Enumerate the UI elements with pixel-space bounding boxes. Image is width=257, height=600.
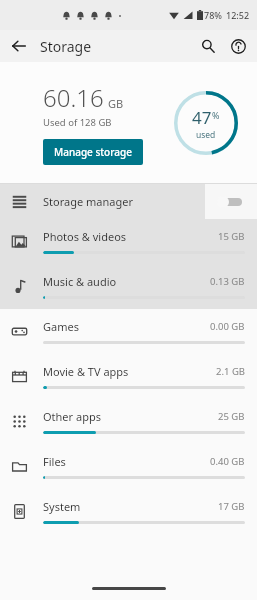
staticText: Manage storage [54,145,132,159]
staticText: Other apps [43,409,101,424]
staticText: Used of 128 GB [43,116,112,129]
staticText: Music & audio [43,274,117,289]
button[interactable]: System [0,489,257,534]
button[interactable]: Photos & videos [0,219,257,264]
staticText: Games [43,319,79,334]
staticText: Photos & videos [43,229,127,244]
staticText: 25 GB [218,410,245,423]
staticText: 47 [192,106,212,129]
button[interactable]: Music & audio [0,264,257,309]
staticText: 15 GB [218,230,245,243]
staticText: 0.40 GB [210,455,245,468]
staticText: System [43,499,81,514]
staticText: 78% [204,9,222,21]
staticText: 0.13 GB [210,275,245,288]
staticText: 60.16 [43,81,104,114]
staticText: Files [43,454,66,469]
button[interactable]: Back [6,33,32,59]
staticText: Storage [40,37,92,56]
button[interactable]: Manage storage [43,139,143,165]
button[interactable]: Games [0,309,257,354]
button[interactable]: Movie & TV apps [0,354,257,399]
staticText: 12:52 [226,9,250,21]
staticText: % [212,109,220,121]
staticText: 17 GB [218,500,245,513]
button[interactable]: Storage manager toggle [216,192,246,212]
staticText: Movie & TV apps [43,364,129,379]
staticText: Storage manager [43,194,133,209]
staticText: GB [108,96,124,111]
button[interactable]: Help [225,33,251,59]
button[interactable]: Search [195,33,221,59]
button[interactable]: Other apps [0,399,257,444]
staticText: used [196,129,216,141]
staticText: 2.1 GB [216,365,245,378]
button[interactable]: Storage manager [0,184,257,219]
staticText: 0.00 GB [210,320,245,333]
button[interactable]: Files [0,444,257,489]
